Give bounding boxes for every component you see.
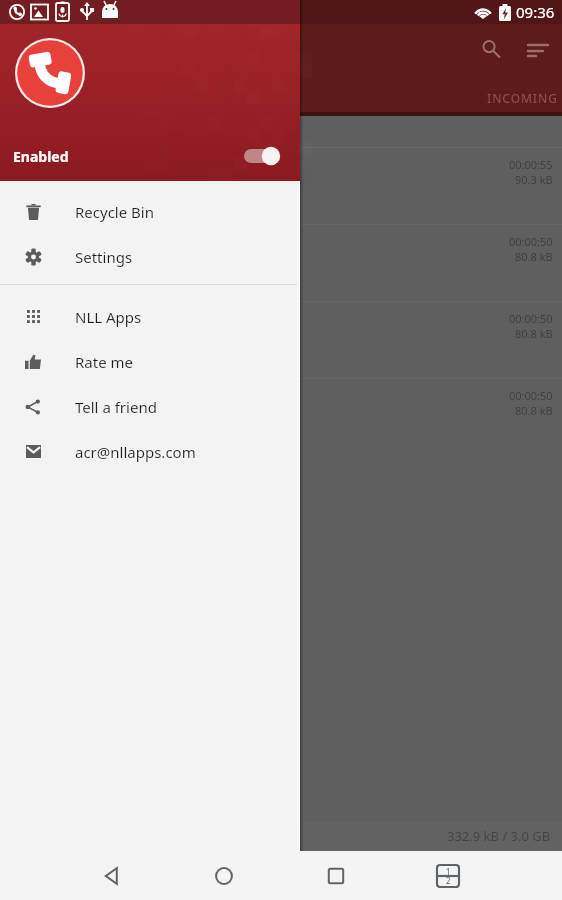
button[interactable]: acr@nllapps.com (0, 429, 300, 474)
staticText: 90.3 kB (515, 172, 553, 187)
staticText: INCOMING (487, 90, 558, 106)
button[interactable]: Back (88, 851, 136, 900)
staticText: Tell a friend (75, 397, 157, 417)
button[interactable]: 00:00:50 (0, 301, 562, 378)
button[interactable]: Settings (0, 234, 300, 279)
staticText: 332.9 kB / 3.0 GB (447, 827, 551, 845)
staticText: 00:00:50 (509, 234, 553, 249)
button[interactable]: 00:00:50 (0, 224, 562, 301)
button[interactable]: 00:00:55 (0, 147, 562, 224)
staticText: 2 (446, 875, 451, 886)
staticText: 00:00:50 (509, 311, 553, 326)
button[interactable]: Enabled toggle (236, 137, 288, 177)
staticText: 80.8 kB (515, 326, 553, 341)
staticText: 1 (446, 866, 451, 877)
staticText: 00:00:50 (509, 388, 553, 403)
staticText: 00:00:55 (509, 157, 553, 172)
button[interactable]: Home (200, 851, 248, 900)
staticText: Rate me (75, 352, 134, 372)
staticText: Settings (75, 247, 133, 267)
button[interactable]: Recycle Bin (0, 189, 300, 234)
staticText: acr@nllapps.com (75, 442, 196, 462)
button[interactable]: Sort (516, 27, 560, 71)
staticText: 80.8 kB (515, 403, 553, 418)
button[interactable]: Rate me (0, 339, 300, 384)
button[interactable]: NLL Apps (0, 294, 300, 339)
staticText: Recycle Bin (75, 202, 154, 222)
button[interactable]: 00:00:50 (0, 378, 562, 455)
button[interactable]: Recents (312, 851, 360, 900)
button[interactable]: Search (469, 27, 513, 71)
staticText: Enabled (13, 147, 69, 166)
staticText: NLL Apps (75, 307, 142, 327)
staticText: 09:36 (516, 2, 555, 22)
staticText: 80.8 kB (515, 249, 553, 264)
button[interactable]: Tell a friend (0, 384, 300, 429)
button[interactable]: Split screen (424, 851, 472, 900)
button[interactable]: INCOMING (374, 70, 562, 116)
